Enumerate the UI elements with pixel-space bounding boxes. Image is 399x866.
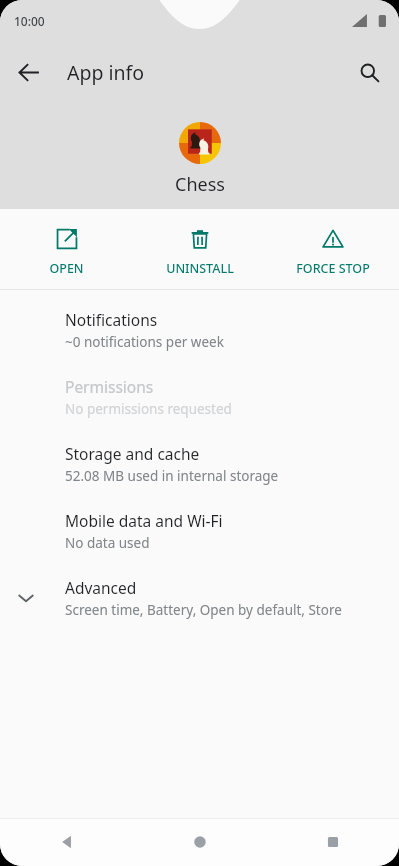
button[interactable]: Notifications: [0, 296, 399, 363]
staticText: OPEN: [49, 260, 84, 277]
button[interactable]: OPEN: [0, 209, 133, 289]
button[interactable]: UNINSTALL: [133, 209, 266, 289]
button[interactable]: Home: [133, 818, 266, 866]
staticText: ~0 notifications per week: [65, 333, 224, 351]
button[interactable]: Mobile data and Wi-Fi: [0, 497, 399, 564]
staticText: Screen time, Battery, Open by default, S…: [65, 601, 342, 619]
staticText: 10:00: [14, 13, 45, 29]
button[interactable]: Permissions: [0, 363, 399, 430]
staticText: UNINSTALL: [166, 260, 234, 277]
button[interactable]: Search: [347, 50, 391, 94]
staticText: Permissions: [65, 376, 154, 397]
button[interactable]: Storage and cache: [0, 430, 399, 497]
staticText: 52.08 MB used in internal storage: [65, 467, 279, 485]
staticText: Advanced: [65, 577, 137, 598]
button[interactable]: FORCE STOP: [266, 209, 399, 289]
button[interactable]: Recents: [266, 818, 399, 866]
staticText: No data used: [65, 534, 150, 552]
staticText: Notifications: [65, 309, 158, 330]
staticText: FORCE STOP: [296, 260, 370, 277]
button[interactable]: Back: [8, 52, 48, 92]
staticText: Mobile data and Wi-Fi: [65, 510, 223, 531]
button[interactable]: Advanced: [0, 564, 399, 631]
button[interactable]: Back: [0, 818, 133, 866]
staticText: No permissions requested: [65, 400, 232, 418]
staticText: Storage and cache: [65, 443, 200, 464]
staticText: Chess: [175, 172, 225, 197]
staticText: App info: [67, 59, 145, 86]
